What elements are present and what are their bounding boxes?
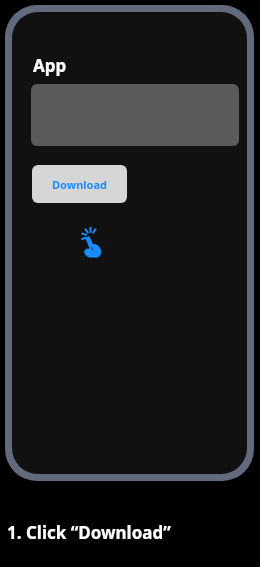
staticText: Download (52, 177, 107, 192)
staticText: 1. Click “Download” (7, 521, 171, 544)
other: Tap (75, 226, 111, 262)
staticText: App (33, 54, 67, 77)
button[interactable]: Download (32, 165, 127, 203)
